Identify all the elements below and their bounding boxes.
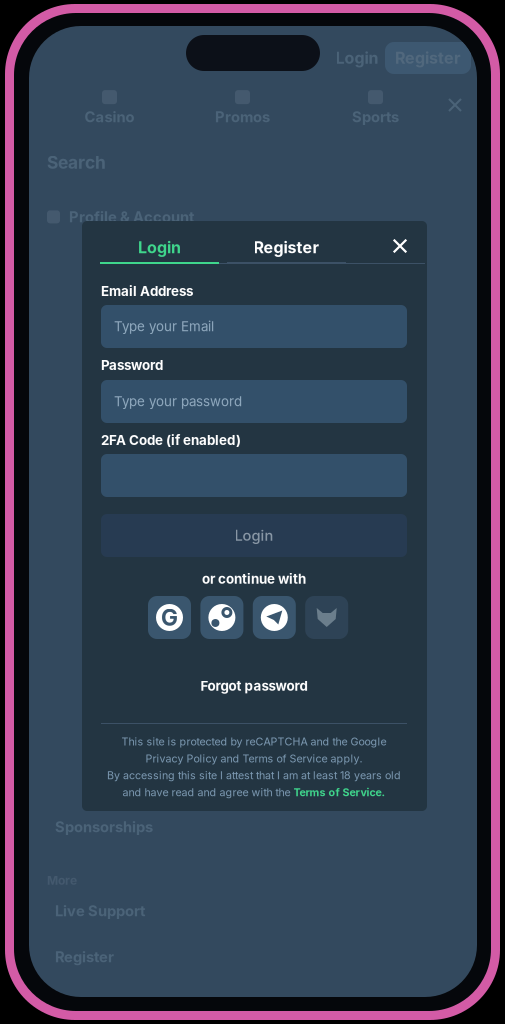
button[interactable]: Type your password <box>101 380 407 423</box>
button[interactable]: Continue with MetaMask <box>305 596 348 639</box>
staticText: Register <box>253 238 319 257</box>
staticText: Type your Email <box>114 318 214 334</box>
staticText: Forgot password <box>200 678 307 694</box>
button[interactable]: Continue with Google <box>148 596 191 639</box>
button[interactable]: Continue with Telegram <box>253 596 296 639</box>
button[interactable]: Continue with Steam <box>200 596 243 639</box>
button[interactable]: Register <box>227 233 346 263</box>
staticText: Profile & Account <box>69 208 194 226</box>
button[interactable]: Close menu <box>448 98 462 112</box>
staticText: Sponsorships <box>55 818 153 836</box>
button[interactable]: Casino <box>43 86 176 130</box>
staticText: or continue with <box>202 571 306 587</box>
staticText: More <box>47 873 77 887</box>
staticText: By accessing this site I attest that I a… <box>107 769 401 782</box>
button[interactable]: Login <box>101 514 407 557</box>
staticText: and have read and agree with the <box>122 786 293 799</box>
button[interactable]: Login <box>100 233 219 264</box>
staticText: G <box>161 604 178 631</box>
staticText: Live Support <box>55 902 145 920</box>
button[interactable]: Close <box>385 231 415 261</box>
staticText: 2FA Code (if enabled) <box>101 432 241 448</box>
staticText: This site is protected by reCAPTCHA and … <box>121 735 386 748</box>
button[interactable]: Sports <box>309 86 442 130</box>
button[interactable]: Promos <box>176 86 309 130</box>
staticText: Search <box>47 152 106 173</box>
button[interactable]: Forgot password <box>82 676 426 696</box>
staticText: Sports <box>352 108 399 126</box>
staticText: Login <box>138 238 181 257</box>
staticText: Register <box>55 948 114 966</box>
staticText: Register <box>395 48 461 68</box>
staticText: Type your password <box>114 393 242 409</box>
staticText: Privacy Policy and Terms of Service appl… <box>145 752 362 765</box>
staticText: Terms of Service. <box>293 786 385 799</box>
staticText: Login <box>234 527 273 544</box>
staticText: Promos <box>215 108 270 126</box>
button[interactable]: Type your Email <box>101 305 407 348</box>
staticText: Email Address <box>101 283 193 299</box>
button[interactable]: Register <box>385 42 471 74</box>
staticText: Login <box>335 48 378 68</box>
button[interactable]: Login <box>329 44 385 72</box>
staticText: Password <box>101 357 163 373</box>
staticText: Casino <box>84 108 134 126</box>
